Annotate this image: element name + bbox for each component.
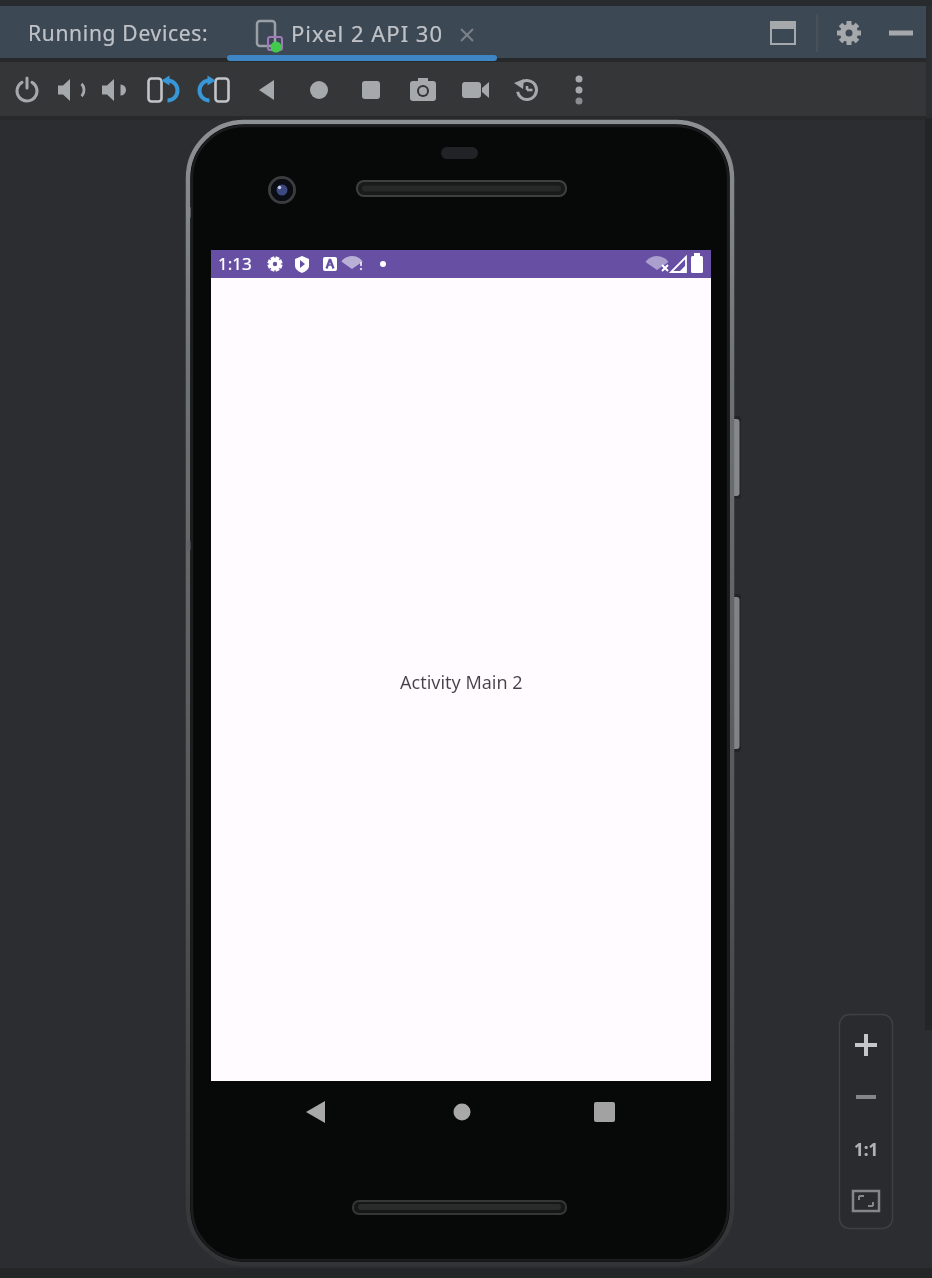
staticText: 1:13 [218,252,252,275]
button[interactable] [96,72,132,108]
button[interactable]: 1:1 [847,1130,885,1168]
button[interactable] [456,24,480,48]
button[interactable] [832,16,866,50]
button[interactable] [884,16,918,50]
button[interactable] [9,72,45,108]
button[interactable] [145,72,181,108]
button[interactable] [53,72,89,108]
staticText: Running Devices: [28,19,209,48]
button[interactable] [196,72,232,108]
button[interactable] [353,72,389,108]
button[interactable] [847,1026,885,1064]
button[interactable] [405,72,441,108]
button[interactable] [509,72,545,108]
button[interactable] [301,72,337,108]
button[interactable] [847,1078,885,1116]
staticText: Pixel 2 API 30 [291,18,444,48]
button[interactable] [766,16,800,50]
button[interactable] [847,1182,885,1220]
button[interactable] [561,72,597,108]
button[interactable]: Pixel 2 API 30 [240,6,490,60]
staticText: 1:1 [854,1138,879,1161]
button[interactable] [457,72,493,108]
staticText: Activity Main 2 [400,670,523,695]
button[interactable] [249,72,285,108]
